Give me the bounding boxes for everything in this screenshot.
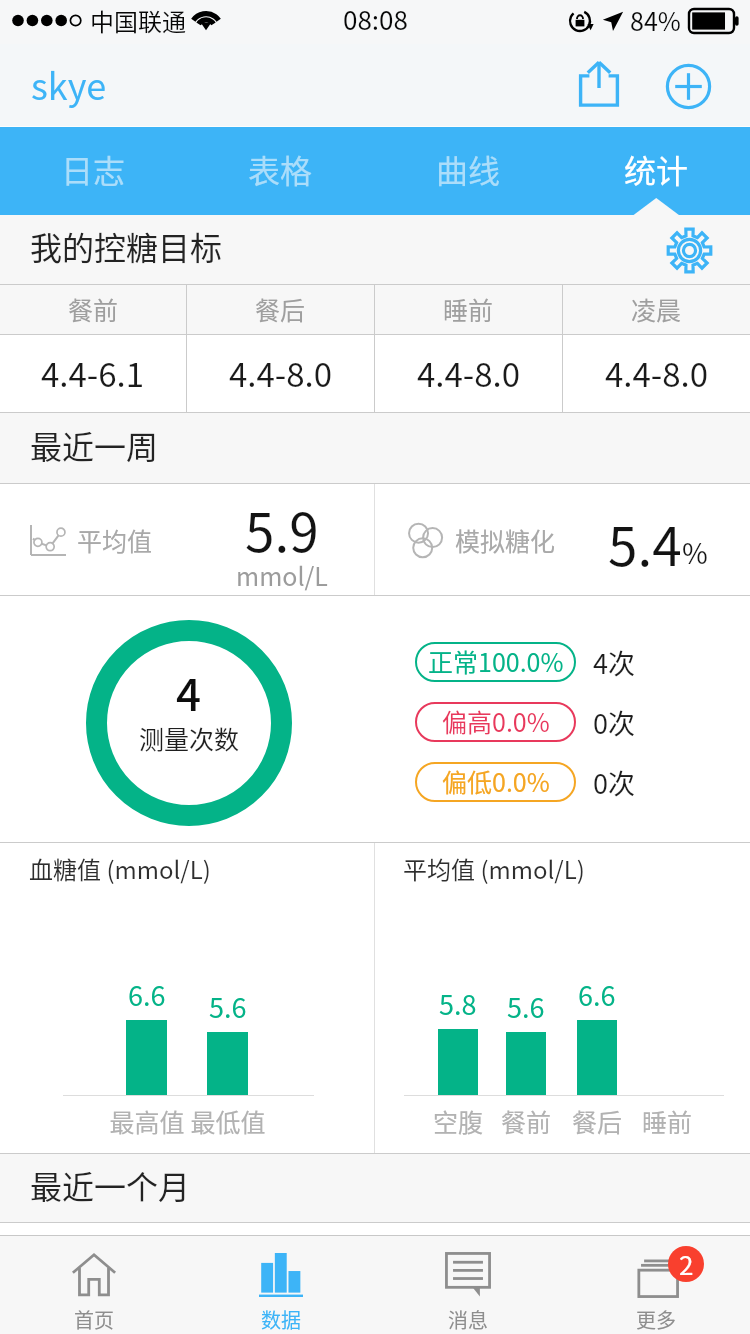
button[interactable]: Add	[657, 55, 719, 117]
staticText: 4	[176, 660, 202, 724]
staticText: 凌晨	[631, 291, 682, 327]
staticText: 模拟糖化	[455, 522, 556, 558]
staticText: 5.4	[608, 505, 682, 582]
staticText: 6.6	[128, 975, 166, 1014]
staticText: 曲线	[436, 146, 501, 192]
staticText: 中国联通	[90, 3, 186, 38]
staticText: 最近一个月	[30, 1162, 191, 1208]
staticText: 4.4-8.0	[417, 349, 521, 397]
staticText: 更多	[636, 1305, 676, 1334]
button[interactable]: Settings	[659, 220, 719, 280]
staticText: 餐后	[255, 291, 306, 327]
button[interactable]: 统计	[562, 127, 750, 215]
staticText: 测量次数	[139, 720, 240, 756]
staticText: 统计	[624, 146, 689, 192]
button[interactable]: 日志	[0, 127, 187, 215]
staticText: 5.9	[245, 491, 319, 568]
staticText: 餐前	[471, 1103, 581, 1139]
staticText: mmol/L	[236, 557, 328, 593]
staticText: 4.4-8.0	[229, 349, 333, 397]
staticText: 4.4-8.0	[605, 349, 709, 397]
staticText: 平均值	[77, 522, 153, 558]
staticText: 84%	[630, 2, 681, 38]
staticText: 餐后	[542, 1103, 652, 1139]
staticText: 4次	[593, 643, 635, 682]
staticText: 正常100.0%	[428, 643, 564, 679]
staticText: 08:08	[343, 0, 408, 38]
staticText: 最高值	[92, 1103, 202, 1139]
staticText: skye	[31, 58, 107, 110]
button[interactable]: 曲线	[374, 127, 562, 215]
staticText: 最低值	[173, 1103, 283, 1139]
staticText: 餐前	[68, 291, 119, 327]
staticText: 平均值 (mmol/L)	[403, 851, 585, 886]
staticText: 5.6	[209, 987, 247, 1026]
staticText: 5.6	[507, 987, 545, 1026]
staticText: 偏高0.0%	[442, 703, 550, 739]
staticText: 2	[679, 1246, 694, 1281]
staticText: 空腹	[403, 1103, 513, 1139]
staticText: 日志	[61, 146, 126, 192]
staticText: 6.6	[578, 975, 616, 1014]
staticText: 0次	[593, 763, 635, 802]
staticText: 偏低0.0%	[442, 763, 550, 799]
staticText: 睡前	[612, 1103, 722, 1139]
button[interactable]: 消息	[374, 1235, 562, 1334]
staticText: 我的控糖目标	[30, 223, 223, 269]
staticText: 最近一周	[30, 422, 159, 468]
staticText: %	[682, 532, 708, 573]
button[interactable]: 2	[562, 1235, 750, 1334]
staticText: 消息	[448, 1305, 488, 1334]
button[interactable]: 首页	[0, 1235, 187, 1334]
staticText: 4.4-6.1	[41, 349, 145, 397]
staticText: 0次	[593, 703, 635, 742]
staticText: 血糖值 (mmol/L)	[29, 851, 211, 886]
staticText: 表格	[248, 146, 313, 192]
button[interactable]: Share	[568, 55, 630, 117]
staticText: 数据	[261, 1305, 301, 1334]
staticText: 首页	[74, 1305, 114, 1334]
button[interactable]: 数据	[187, 1235, 374, 1334]
staticText: 睡前	[443, 291, 494, 327]
staticText: 5.8	[439, 984, 477, 1023]
button[interactable]: 表格	[187, 127, 374, 215]
